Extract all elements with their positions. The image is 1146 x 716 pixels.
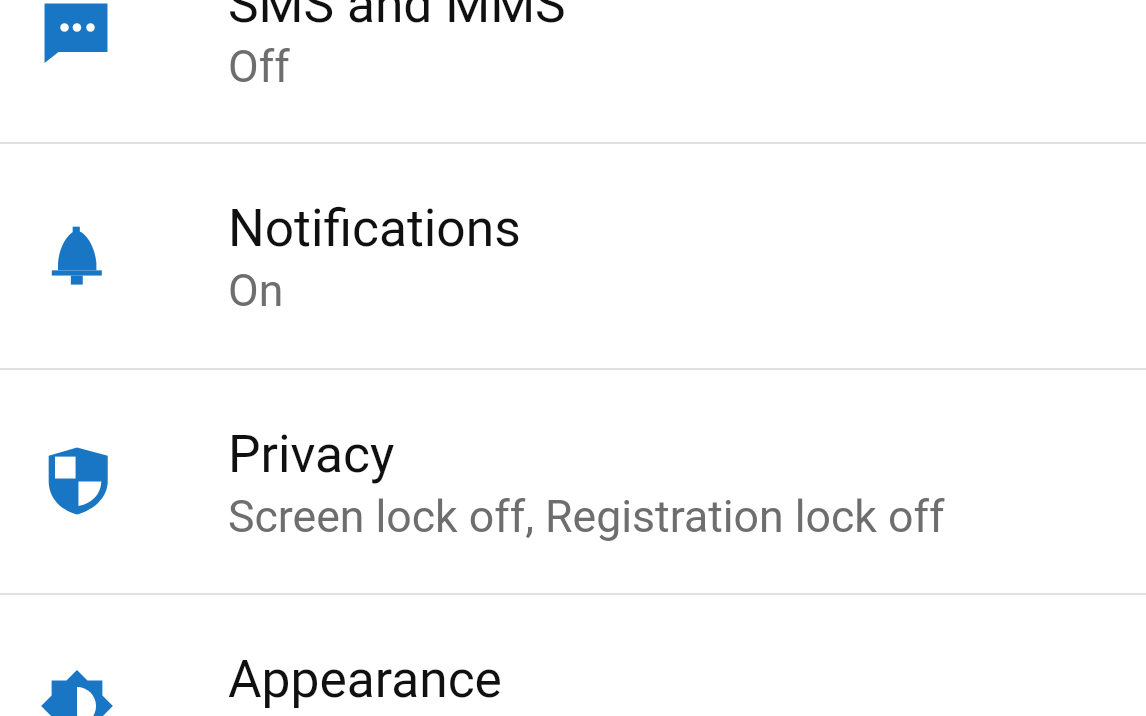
staticText: Privacy — [228, 424, 395, 484]
other: Appearance — [37, 666, 117, 716]
staticText: Notifications — [228, 198, 521, 258]
staticText: Off — [228, 41, 290, 93]
staticText: Screen lock off, Registration lock off — [228, 491, 945, 543]
button[interactable]: Notifications — [0, 142, 1146, 367]
other: Privacy — [37, 441, 117, 521]
button[interactable]: Privacy — [0, 368, 1146, 593]
button[interactable]: Appearance — [0, 593, 1146, 716]
staticText: SMS and MMS — [228, 0, 566, 34]
button[interactable]: SMS and MMS — [0, 0, 1146, 143]
other: Notifications — [37, 215, 117, 295]
staticText: Appearance — [228, 649, 502, 709]
staticText: On — [228, 265, 284, 317]
other: SMS and MMS — [37, 0, 117, 71]
